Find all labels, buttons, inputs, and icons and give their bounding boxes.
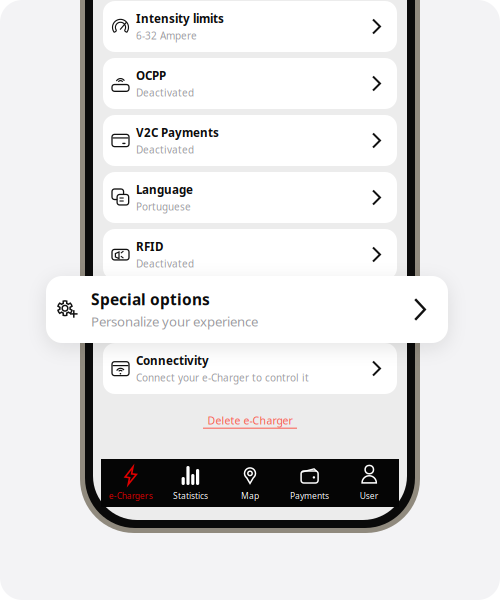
button[interactable]: Map <box>220 459 280 507</box>
button[interactable]: V2C Payments <box>103 115 397 166</box>
button[interactable]: Statistics <box>161 459 220 507</box>
staticText: Intensity limits <box>136 10 224 26</box>
staticText: e-Chargers <box>109 490 153 502</box>
staticText: Personalize your experience <box>91 312 258 330</box>
staticText: RFID <box>136 238 163 254</box>
staticText: Map <box>241 490 259 502</box>
staticText: Payments <box>290 490 329 502</box>
staticText: Portuguese <box>136 200 191 213</box>
staticText: Personalize your experience <box>136 314 271 327</box>
staticText: Special options <box>136 295 221 311</box>
staticText: Delete e-Charger <box>207 413 292 428</box>
staticText: Deactivated <box>136 86 194 99</box>
button[interactable]: Special options <box>46 276 448 343</box>
staticText: User <box>360 490 379 502</box>
staticText: Connect your e-Charger to control it <box>136 371 309 384</box>
button[interactable]: OCPP <box>103 58 397 109</box>
button[interactable]: Special options <box>103 286 397 337</box>
button[interactable]: e-Chargers <box>101 459 161 507</box>
button[interactable]: Delete e-Charger <box>103 410 397 432</box>
staticText: Deactivated <box>136 257 194 270</box>
button[interactable]: Payments <box>280 459 339 507</box>
staticText: Deactivated <box>136 143 194 156</box>
button[interactable]: Language <box>103 172 397 223</box>
button[interactable]: Intensity limits <box>103 1 397 52</box>
button[interactable]: RFID <box>103 229 397 280</box>
staticText: OCPP <box>136 67 166 83</box>
button[interactable]: Connectivity <box>103 343 397 394</box>
staticText: Statistics <box>173 490 208 502</box>
staticText: V2C Payments <box>136 124 219 140</box>
staticText: Connectivity <box>136 352 209 368</box>
staticText: Special options <box>91 289 210 310</box>
staticText: 6-32 Ampere <box>136 29 197 42</box>
button[interactable]: User <box>339 459 399 507</box>
staticText: Language <box>136 181 193 197</box>
